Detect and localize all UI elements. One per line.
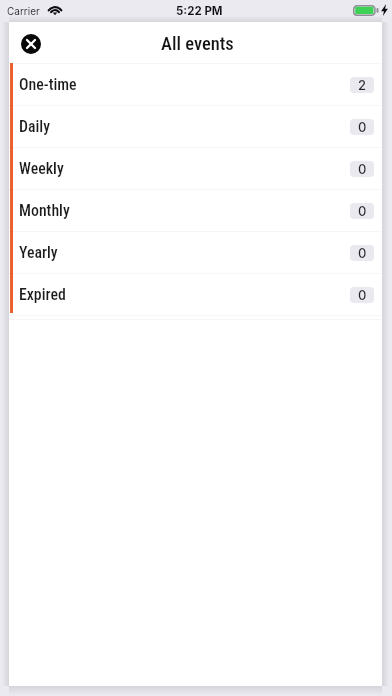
staticText: Daily	[19, 117, 51, 136]
staticText: All events	[161, 33, 234, 55]
staticText: Yearly	[19, 243, 58, 262]
staticText: 5:22 PM	[176, 4, 223, 18]
staticText: Expired	[19, 285, 66, 304]
staticText: 0	[358, 245, 367, 261]
staticText: 0	[358, 287, 367, 303]
button[interactable]: One-time	[9, 64, 382, 105]
button[interactable]: Monthly	[9, 190, 382, 231]
staticText: Monthly	[19, 201, 70, 220]
button[interactable]: Close	[21, 34, 41, 54]
button[interactable]: Yearly	[9, 232, 382, 273]
staticText: Carrier	[7, 5, 40, 17]
staticText: 0	[358, 119, 367, 135]
staticText: Weekly	[19, 159, 64, 178]
button[interactable]: Expired	[9, 274, 382, 315]
staticText: 0	[358, 161, 367, 177]
button[interactable]: Weekly	[9, 148, 382, 189]
staticText: 0	[358, 203, 367, 219]
button[interactable]: Daily	[9, 106, 382, 147]
staticText: One-time	[19, 75, 77, 94]
staticText: 2	[358, 77, 367, 93]
